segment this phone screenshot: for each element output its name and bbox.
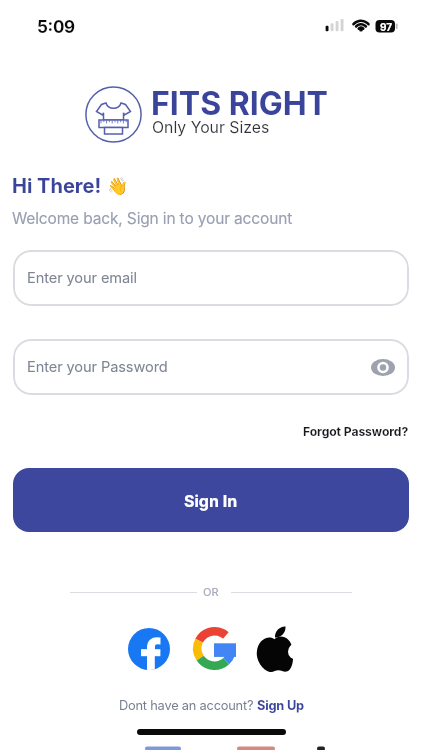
staticText: Only Your Sizes — [152, 118, 270, 137]
staticText: 97 — [380, 21, 393, 33]
staticText: OR — [203, 585, 219, 598]
button[interactable]: Forgot Password? — [303, 424, 409, 439]
staticText: Sign Up — [257, 698, 304, 713]
button[interactable] — [254, 626, 294, 672]
button[interactable]: Sign In — [13, 468, 409, 532]
staticText: Welcome back, Sign in to your account — [12, 209, 293, 228]
staticText: 👋 — [107, 176, 129, 196]
button[interactable]: Enter your Password — [13, 339, 409, 395]
staticText: Dont have an account? — [119, 698, 257, 713]
staticText: Enter your Password — [27, 358, 168, 376]
staticText: Sign In — [184, 491, 238, 510]
staticText: Enter your email — [27, 269, 137, 287]
button[interactable] — [128, 628, 170, 670]
button[interactable]: Dont have an account? — [0, 698, 422, 713]
button[interactable] — [193, 627, 236, 670]
staticText: Hi There! — [12, 174, 102, 198]
staticText: FITS RIGHT — [151, 84, 328, 123]
staticText: 5:09 — [37, 17, 75, 38]
button[interactable]: Enter your email — [13, 250, 409, 306]
